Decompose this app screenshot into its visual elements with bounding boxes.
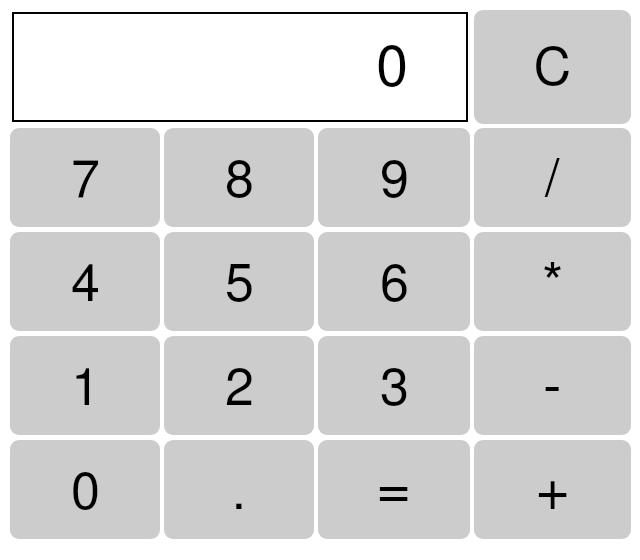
button[interactable]: 3 — [318, 336, 470, 435]
button[interactable]: . — [164, 440, 314, 539]
staticText: 0 — [71, 467, 100, 519]
button[interactable]: 0 — [10, 440, 160, 539]
button[interactable]: 4 — [10, 232, 160, 331]
button[interactable]: - — [474, 336, 631, 435]
staticText: 0 — [376, 40, 408, 97]
button[interactable]: 7 — [10, 128, 160, 227]
button[interactable]: 2 — [164, 336, 314, 435]
staticText: - — [543, 360, 562, 415]
staticText: C — [534, 42, 571, 94]
staticText: 6 — [380, 259, 409, 311]
button[interactable]: 6 — [318, 232, 470, 331]
staticText: * — [542, 259, 564, 314]
staticText: + — [536, 462, 570, 519]
staticText: 3 — [380, 363, 409, 415]
button[interactable]: / — [474, 128, 631, 227]
staticText: . — [232, 467, 246, 519]
button[interactable]: 1 — [10, 336, 160, 435]
staticText: 9 — [380, 155, 409, 207]
button[interactable]: * — [474, 232, 631, 331]
button[interactable]: 9 — [318, 128, 470, 227]
button[interactable]: C — [474, 10, 631, 124]
staticText: 2 — [225, 363, 254, 415]
staticText: 5 — [225, 259, 254, 311]
button[interactable]: + — [474, 440, 631, 539]
staticText: 4 — [71, 259, 100, 311]
staticText: / — [545, 154, 560, 206]
staticText: 7 — [71, 155, 100, 207]
staticText: 1 — [71, 363, 100, 415]
button[interactable]: 8 — [164, 128, 314, 227]
staticText: 8 — [225, 155, 254, 207]
button[interactable]: 5 — [164, 232, 314, 331]
staticText: = — [377, 461, 411, 518]
button[interactable]: = — [318, 440, 470, 539]
